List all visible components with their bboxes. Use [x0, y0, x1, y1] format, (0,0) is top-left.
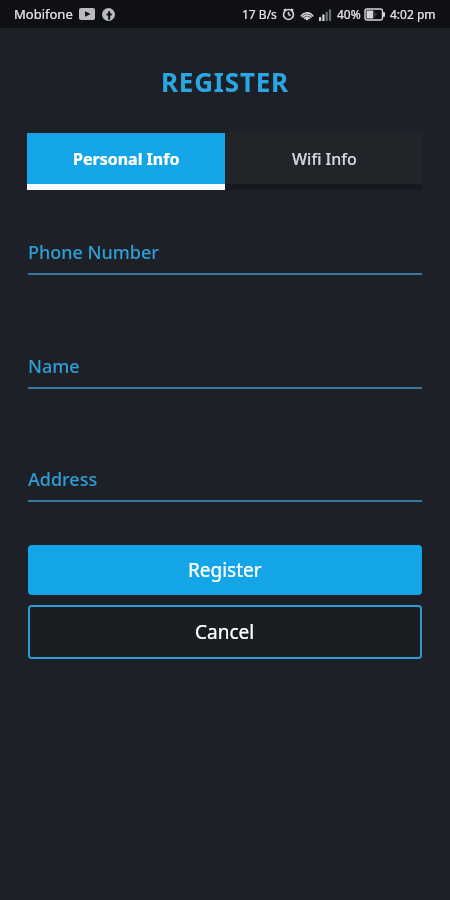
button[interactable]: Wifi Info	[225, 133, 423, 190]
staticText: Mobifone	[14, 5, 73, 23]
button[interactable]: Cancel	[28, 605, 422, 659]
staticText: Wifi Info	[292, 148, 357, 170]
staticText: Personal Info	[73, 148, 180, 170]
staticText: Cancel	[195, 619, 255, 645]
staticText: Phone Number	[28, 240, 159, 262]
staticText: 40%	[337, 6, 361, 22]
staticText: 4:02 pm	[390, 6, 436, 22]
button[interactable]: Register	[28, 545, 422, 595]
staticText: Address	[28, 467, 98, 489]
staticText: Register	[188, 557, 262, 583]
button[interactable]: Personal Info	[27, 133, 225, 190]
staticText: REGISTER	[161, 64, 289, 98]
staticText: Name	[28, 354, 80, 376]
staticText: 17 B/s	[242, 6, 277, 22]
